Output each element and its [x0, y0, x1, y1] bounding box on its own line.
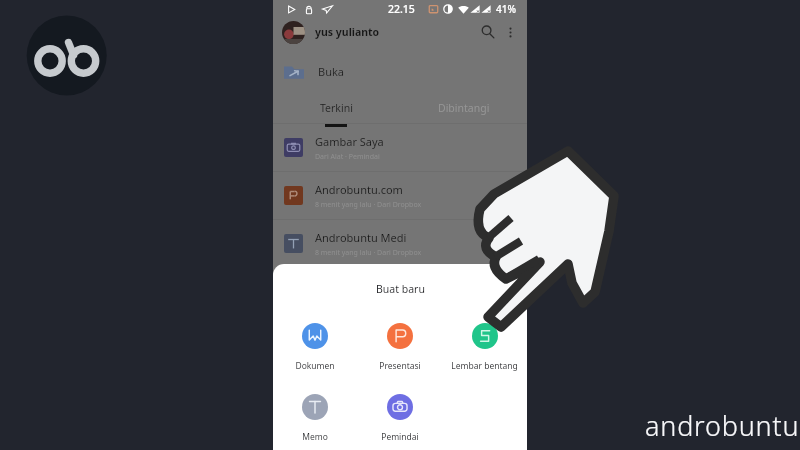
- button[interactable]: Androbuntu logo: [26, 14, 108, 96]
- button[interactable]: Pemindai: [357, 394, 442, 443]
- button[interactable]: Androbuntu Medi: [284, 220, 517, 267]
- staticText: Dokumen: [295, 360, 335, 372]
- button[interactable]: Androbuntu.com: [284, 172, 517, 219]
- staticText: Androbuntu.com: [315, 182, 403, 197]
- button[interactable]: Terkini: [273, 97, 400, 118]
- staticText: Pemindai: [381, 431, 419, 443]
- staticText: Dibintangi: [438, 101, 490, 115]
- staticText: 8 menit yang lalu · Dari Dropbox: [315, 200, 422, 210]
- staticText: Presentasi: [379, 360, 421, 372]
- button[interactable]: Dibintangi: [400, 97, 527, 118]
- staticText: Androbuntu Medi: [315, 230, 407, 245]
- staticText: Terkini: [320, 101, 353, 115]
- button[interactable]: Lembar bentang: [442, 323, 527, 372]
- button[interactable]: Buka: [284, 46, 527, 97]
- staticText: 8 menit yang lalu · Dari Dropbox: [315, 248, 422, 258]
- staticText: yus yulianto: [315, 25, 380, 39]
- button[interactable]: Search: [476, 20, 500, 44]
- staticText: 41%: [496, 2, 516, 16]
- staticText: Gambar Saya: [315, 134, 384, 149]
- staticText: Buka: [318, 64, 344, 79]
- button[interactable]: Dokumen: [273, 323, 357, 372]
- button[interactable]: More options: [500, 22, 520, 42]
- staticText: Lembar bentang: [451, 360, 518, 372]
- staticText: 22.15: [388, 2, 415, 16]
- staticText: Dari Alat · Pemindai: [315, 152, 380, 162]
- button[interactable]: Account: [282, 21, 305, 44]
- staticText: androbuntu: [645, 407, 800, 444]
- staticText: Memo: [302, 431, 328, 443]
- button[interactable]: Gambar Saya: [284, 124, 517, 171]
- staticText: Buat baru: [376, 282, 425, 296]
- button[interactable]: Memo: [273, 394, 357, 443]
- button[interactable]: Presentasi: [357, 323, 442, 372]
